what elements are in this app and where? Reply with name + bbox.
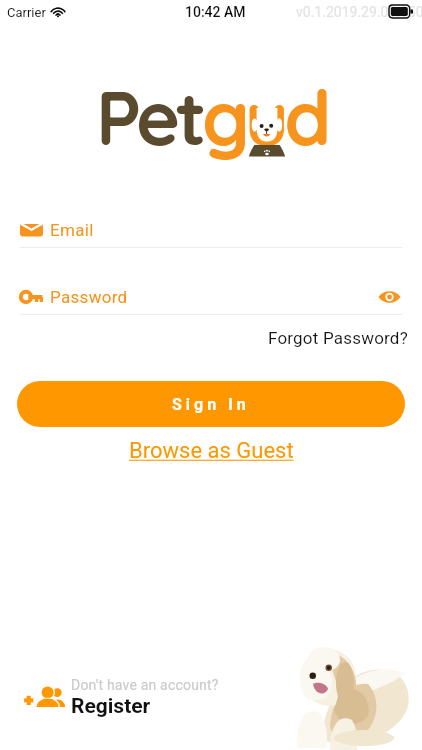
staticText: Register: [71, 694, 151, 719]
staticText: 10:42 AM: [185, 4, 246, 20]
staticText: Pet: [96, 70, 202, 164]
staticText: v0.1.2019.29.01.1500: [296, 4, 422, 20]
staticText: Don't have an account?: [71, 677, 219, 693]
staticText: Browse as Guest: [129, 438, 294, 464]
staticText: Sign In: [172, 395, 250, 414]
button[interactable]: Sign In: [17, 381, 405, 427]
staticText: Password: [50, 287, 128, 307]
button[interactable]: Browse as Guest: [125, 436, 298, 466]
button[interactable]: Show password: [376, 286, 402, 308]
button[interactable]: Forgot Password?: [268, 326, 422, 350]
staticText: Email: [50, 220, 94, 240]
staticText: gud: [202, 70, 327, 164]
staticText: Forgot Password?: [268, 328, 408, 348]
staticText: Carrier: [7, 5, 46, 20]
button[interactable]: Don't have an account?: [21, 675, 221, 721]
